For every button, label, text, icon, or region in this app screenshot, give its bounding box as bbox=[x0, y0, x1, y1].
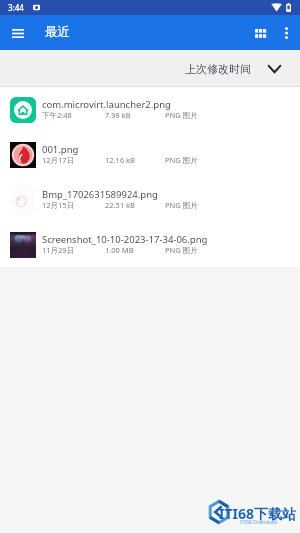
button[interactable]: 001.png bbox=[0, 132, 300, 177]
button[interactable]: com.microvirt.launcher2.png bbox=[0, 87, 300, 132]
staticText: ITI68 Download bbox=[240, 519, 277, 526]
staticText: ITI68下载站 bbox=[219, 504, 296, 523]
staticText: 1.00 MB bbox=[105, 245, 134, 255]
button[interactable]: Screenshot_10-10-2023-17-34-06.png bbox=[0, 222, 300, 267]
staticText: 001.png bbox=[42, 143, 79, 156]
staticText: 12月15日 bbox=[42, 200, 75, 210]
staticText: com.microvirt.launcher2.png bbox=[42, 98, 171, 111]
staticText: 12.16 kB bbox=[105, 155, 135, 165]
staticText: PNG 图片 bbox=[165, 200, 198, 210]
staticText: 11月29日 bbox=[42, 245, 75, 255]
button[interactable]: More options bbox=[275, 22, 297, 44]
button[interactable]: Bmp_1702631589924.png bbox=[0, 177, 300, 222]
staticText: PNG 图片 bbox=[165, 245, 198, 255]
staticText: 上次修改时间 bbox=[185, 62, 251, 76]
button[interactable]: Open navigation drawer bbox=[5, 20, 31, 46]
staticText: PNG 图片 bbox=[165, 155, 198, 165]
staticText: 下午2:48 bbox=[42, 110, 72, 120]
button[interactable]: 上次修改时间 bbox=[185, 62, 280, 76]
staticText: Screenshot_10-10-2023-17-34-06.png bbox=[42, 233, 208, 246]
staticText: 最近 bbox=[45, 24, 70, 40]
button[interactable]: Grid view bbox=[248, 21, 272, 45]
staticText: PNG 图片 bbox=[165, 110, 198, 120]
staticText: 3:44 bbox=[8, 2, 24, 13]
staticText: 22.51 kB bbox=[105, 200, 135, 210]
staticText: 12月17日 bbox=[42, 155, 75, 165]
staticText: 7.98 kB bbox=[105, 110, 131, 120]
staticText: Bmp_1702631589924.png bbox=[42, 188, 158, 201]
